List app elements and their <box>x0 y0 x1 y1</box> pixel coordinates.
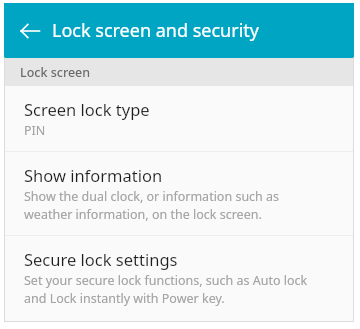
staticText: PIN <box>24 122 46 139</box>
staticText: Secure lock settings <box>24 248 178 270</box>
button[interactable]: Screen lock type <box>4 86 354 151</box>
button[interactable]: Back <box>12 13 48 49</box>
staticText: Lock screen and security <box>52 18 259 43</box>
staticText: weather information, on the lock screen. <box>24 206 262 223</box>
staticText: Show the dual clock, or information such… <box>24 188 280 205</box>
staticText: and Lock instantly with Power key. <box>24 290 225 307</box>
staticText: Set your secure lock functions, such as … <box>24 272 308 289</box>
staticText: Screen lock type <box>24 98 150 120</box>
staticText: Show information <box>24 164 163 186</box>
button[interactable]: Secure lock settings <box>4 236 354 319</box>
staticText: Lock screen <box>20 64 91 81</box>
button[interactable]: Show information <box>4 152 354 235</box>
